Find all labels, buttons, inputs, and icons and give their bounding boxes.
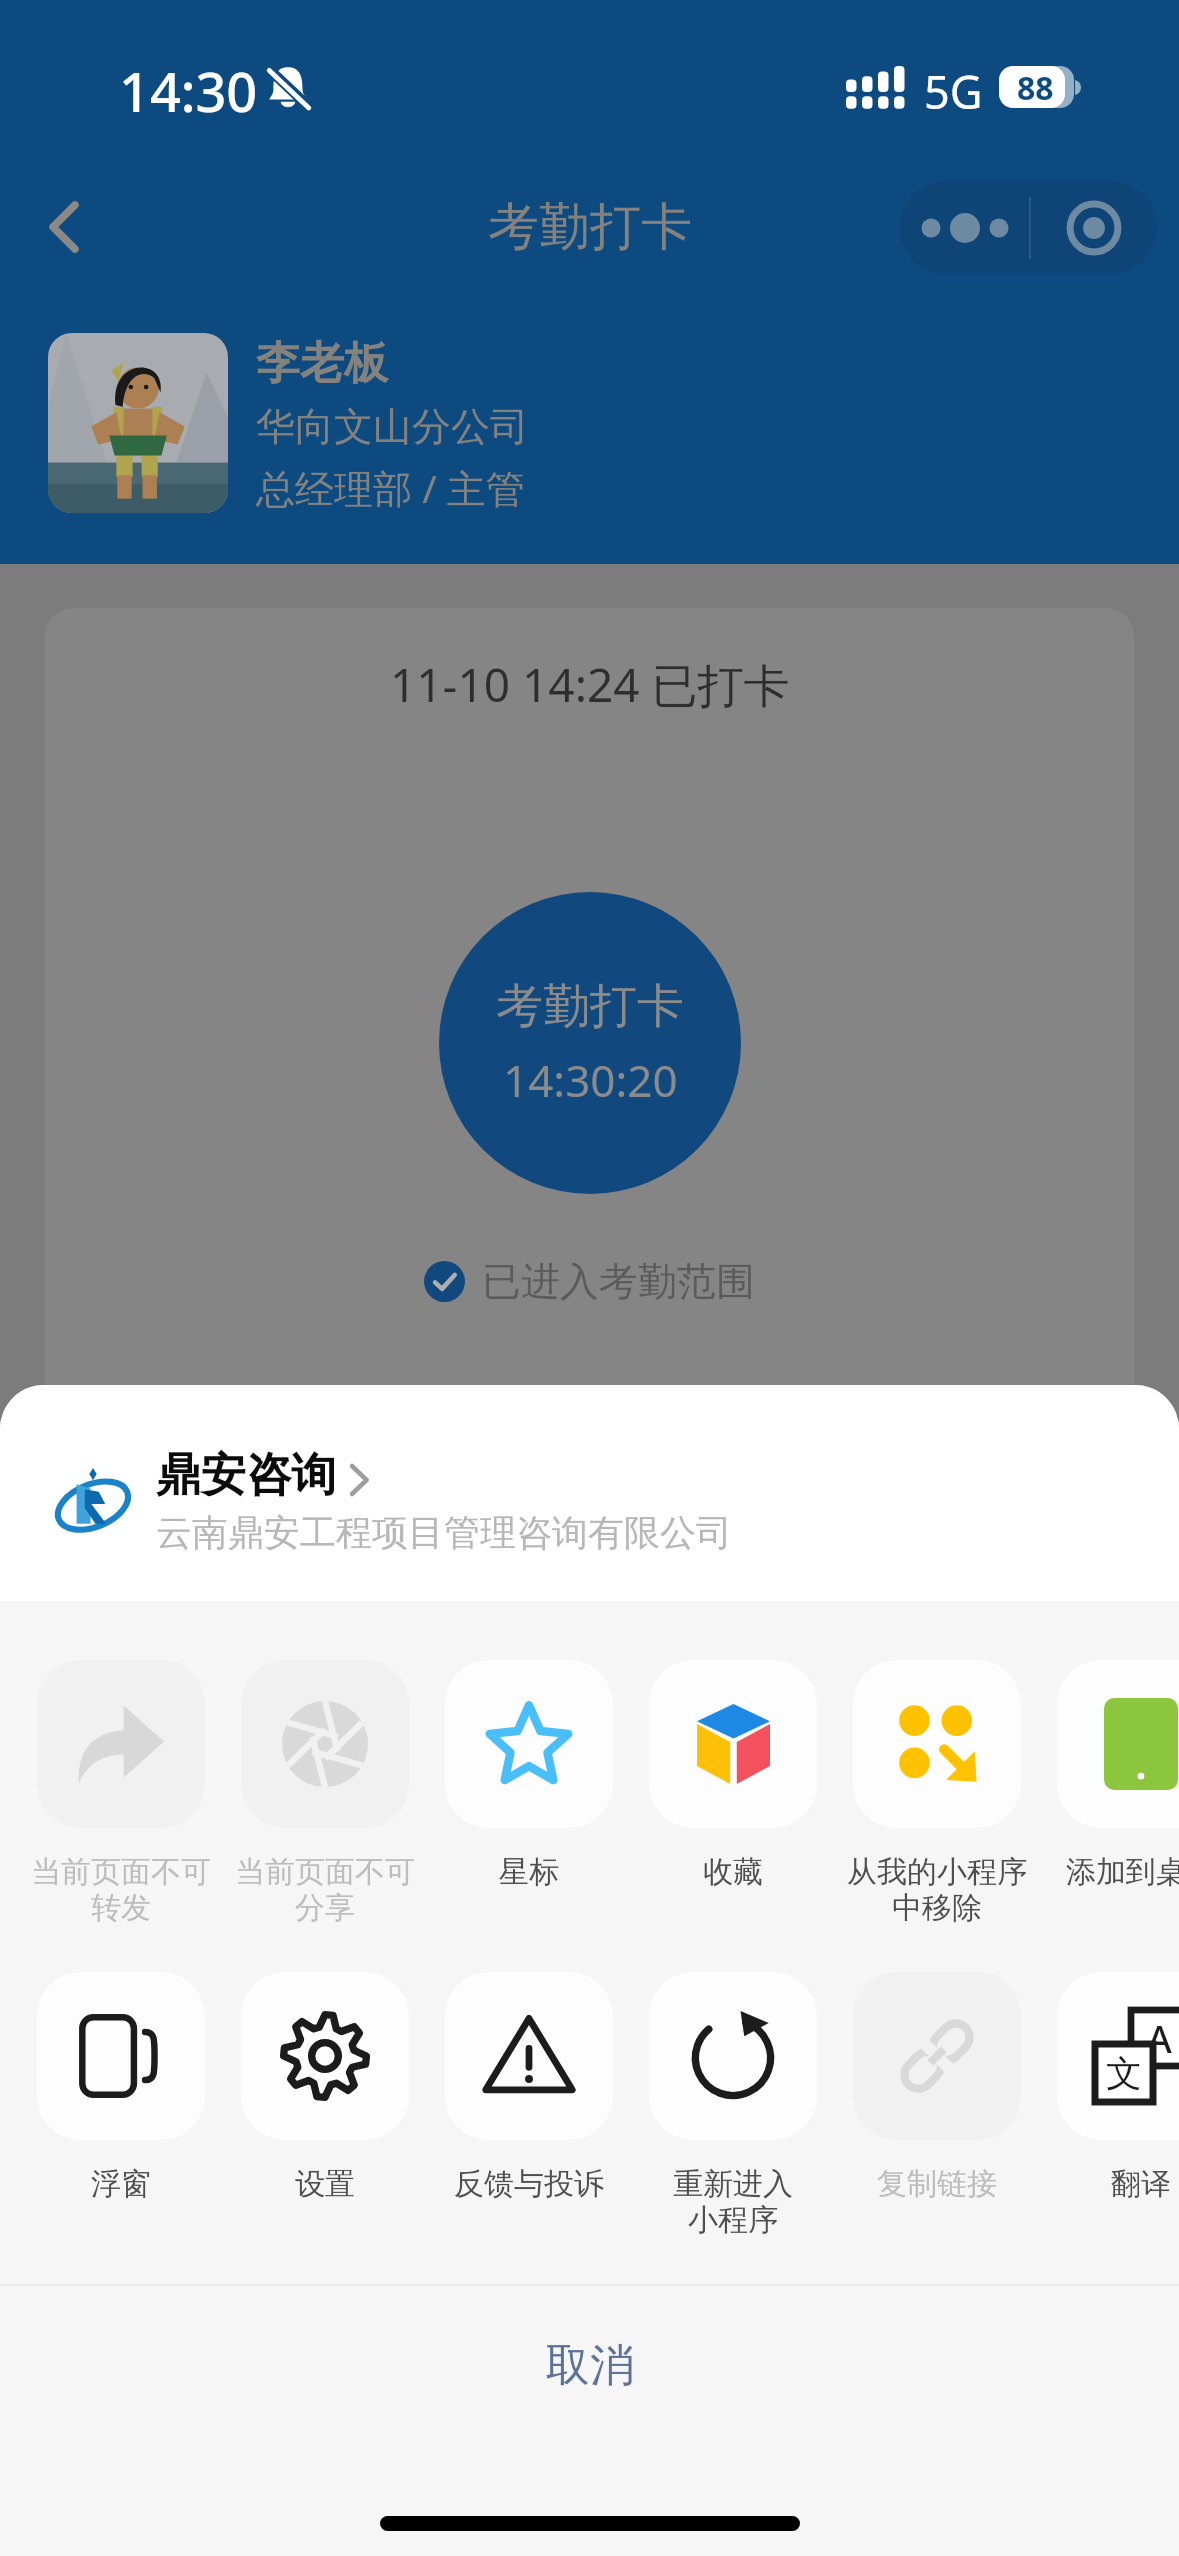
staticText: 复制链接 xyxy=(835,2165,1039,2203)
staticText: 考勤打卡 xyxy=(488,195,692,259)
staticText: 反馈与投诉 xyxy=(427,2165,631,2203)
button[interactable] xyxy=(445,1972,613,2232)
button[interactable]: Close mini program xyxy=(1031,181,1157,274)
staticText: 收藏 xyxy=(631,1853,835,1891)
staticText: A xyxy=(1147,2012,1172,2064)
button[interactable] xyxy=(241,1972,409,2232)
button[interactable] xyxy=(241,1660,409,1920)
staticText: 设置 xyxy=(223,2165,427,2203)
staticText: 取消 xyxy=(546,2338,634,2393)
button[interactable]: Back xyxy=(0,148,125,296)
button[interactable] xyxy=(853,1660,1021,1920)
staticText: 李老板 xyxy=(256,336,388,391)
button[interactable] xyxy=(37,1660,205,1920)
staticText: 从我的小程序 中移除 xyxy=(835,1853,1039,1927)
staticText: 文 xyxy=(1106,2051,1142,2096)
staticText: 星标 xyxy=(427,1853,631,1891)
button[interactable] xyxy=(445,1660,613,1920)
staticText: 鼎安咨询 xyxy=(156,1447,336,1504)
staticText: 已进入考勤范围 xyxy=(482,1257,755,1306)
staticText: 当前页面不可 分享 xyxy=(223,1853,427,1927)
button[interactable] xyxy=(649,1660,817,1920)
staticText: 88 xyxy=(1017,66,1054,108)
button[interactable]: 鼎安咨询 xyxy=(0,1385,1179,1601)
button[interactable]: User avatar xyxy=(48,333,228,513)
staticText: 重新进入 小程序 xyxy=(631,2165,835,2239)
staticText: 5G xyxy=(924,61,983,122)
button[interactable]: More options xyxy=(900,181,1029,274)
staticText: 当前页面不可 转发 xyxy=(19,1853,223,1927)
button[interactable]: 考勤打卡 xyxy=(439,892,741,1194)
button[interactable]: 取消 xyxy=(0,2285,1179,2440)
staticText: 考勤打卡 xyxy=(496,977,684,1036)
staticText: 翻译 xyxy=(1039,2165,1179,2203)
staticText: 11-10 14:24 已打卡 xyxy=(390,653,790,716)
button[interactable] xyxy=(853,1972,1021,2232)
staticText: 14:30:20 xyxy=(503,1050,678,1110)
staticText: 浮窗 xyxy=(19,2165,223,2203)
button[interactable] xyxy=(1057,1660,1179,1920)
staticText: 华向文山分公司 xyxy=(256,402,529,451)
button[interactable] xyxy=(37,1972,205,2232)
staticText: 添加到桌面 xyxy=(1039,1853,1179,1891)
button[interactable] xyxy=(649,1972,817,2232)
staticText: 14:30 xyxy=(119,54,258,128)
staticText: 云南鼎安工程项目管理咨询有限公司 xyxy=(156,1510,732,1555)
button[interactable]: A xyxy=(1057,1972,1179,2232)
staticText: 总经理部 / 主管 xyxy=(256,461,525,514)
